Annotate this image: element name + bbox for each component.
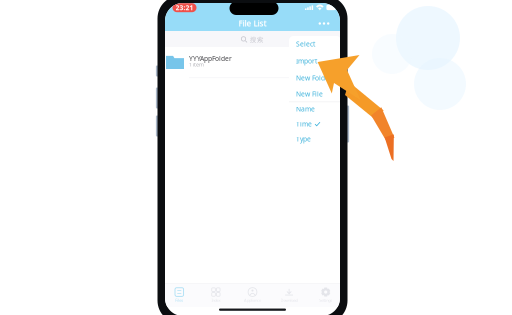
button[interactable]: Name [289, 103, 341, 114]
button[interactable]: More options [315, 17, 333, 29]
staticText: Import [296, 57, 317, 65]
button[interactable]: Download [271, 283, 307, 303]
button[interactable]: Import [289, 55, 341, 66]
button[interactable]: Index [198, 283, 234, 303]
button[interactable]: Search [238, 34, 266, 45]
staticText: New File [296, 90, 323, 98]
staticText: Select [296, 40, 315, 48]
button[interactable]: New File [289, 88, 341, 99]
staticText: Download [281, 298, 298, 303]
button[interactable]: New Folder [289, 72, 341, 83]
button[interactable]: Appliance [234, 283, 271, 303]
staticText: 1 item [189, 61, 204, 68]
staticText: File List [238, 18, 266, 29]
staticText: Name [296, 105, 315, 113]
button[interactable]: Select [289, 38, 341, 49]
staticText: Index [211, 298, 220, 303]
staticText: 搜索 [250, 36, 264, 44]
button[interactable]: Settings [307, 283, 344, 303]
button[interactable]: Time [289, 118, 341, 129]
button[interactable]: YYYAppFolder [165, 47, 340, 77]
staticText: Type [296, 135, 311, 143]
staticText: Files [175, 298, 183, 303]
staticText: Time [296, 120, 312, 128]
staticText: YYYAppFolder [189, 54, 232, 63]
staticText: Settings [319, 298, 332, 303]
button[interactable]: Files [161, 283, 198, 303]
button[interactable]: Type [289, 133, 341, 144]
staticText: Appliance [244, 298, 261, 303]
staticText: New Folder [296, 74, 332, 82]
staticText: 23:21 [175, 3, 193, 12]
